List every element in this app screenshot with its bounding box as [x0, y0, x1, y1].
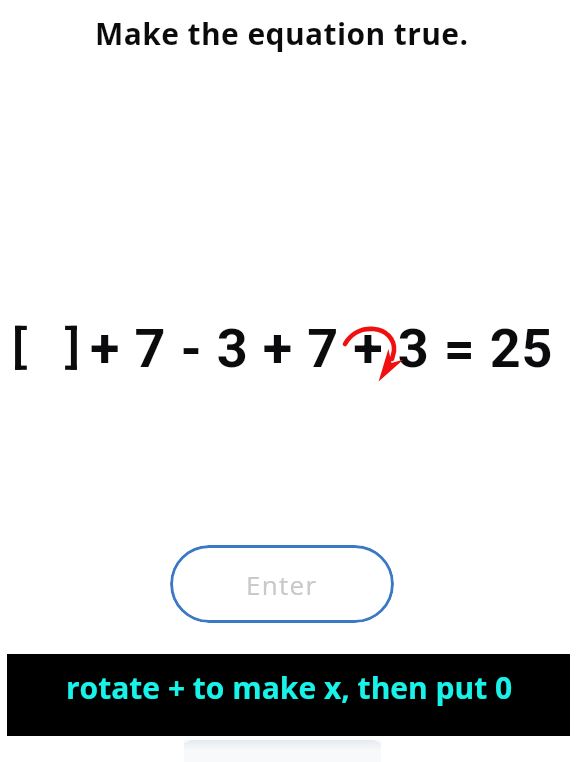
- staticText: Make the equation true.: [95, 13, 469, 54]
- staticText: Enter: [246, 567, 318, 602]
- staticText: rotate + to make x, then put 0: [66, 667, 513, 708]
- staticText: + 7 - 3 + 7 + 3 = 25: [90, 317, 554, 380]
- button[interactable]: Enter: [170, 545, 394, 623]
